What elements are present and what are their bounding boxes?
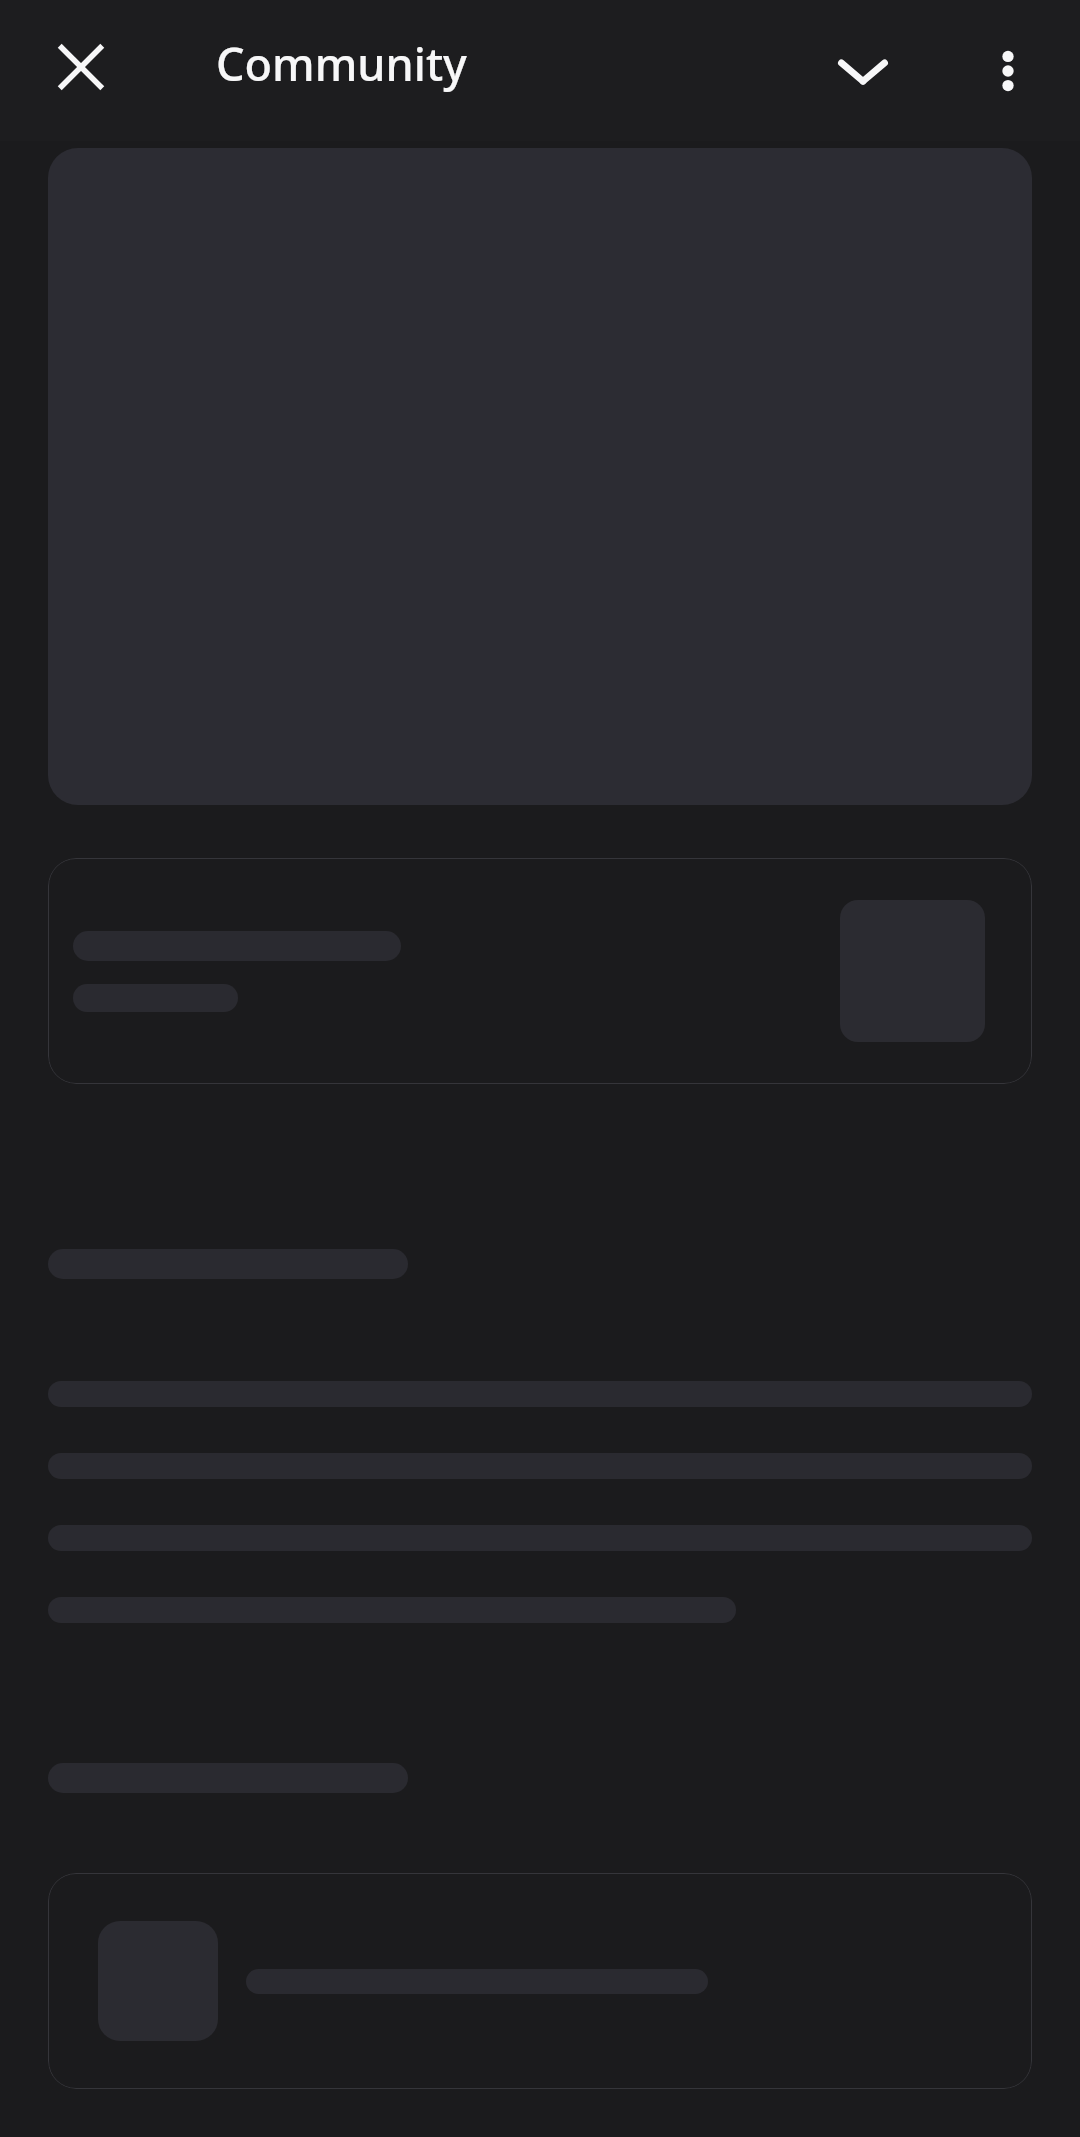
button[interactable]	[48, 1873, 1032, 2089]
button[interactable]: Close	[36, 22, 126, 112]
button[interactable]	[48, 858, 1032, 1084]
button[interactable]: More options	[963, 26, 1053, 116]
button[interactable]: Expand	[818, 26, 908, 116]
staticText: Community	[216, 33, 467, 94]
